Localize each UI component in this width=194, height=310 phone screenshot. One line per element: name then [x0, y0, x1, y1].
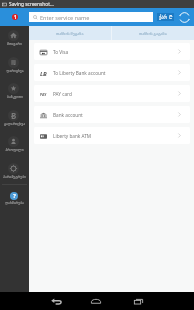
staticText: To Visa: [53, 49, 69, 55]
button[interactable]: LB: [34, 64, 190, 81]
staticText: ?: [13, 192, 16, 200]
button[interactable]: PAY: [34, 85, 190, 102]
button[interactable]: Recent apps: [130, 292, 146, 310]
button[interactable]: Bank account: [34, 106, 190, 123]
staticText: ₾: [169, 14, 173, 20]
staticText: პროფილი: [5, 148, 24, 152]
button[interactable]: ქარ: [157, 13, 174, 21]
button[interactable]: დარიცხვა: [0, 57, 29, 73]
button[interactable]: Enter service name: [29, 12, 153, 22]
staticText: Enter service name: [40, 14, 90, 21]
button[interactable]: Home: [88, 292, 104, 310]
button[interactable]: თანხის გატანა: [112, 26, 194, 40]
staticText: ბანკვითი: [7, 95, 23, 99]
staticText: პარამეტრები: [3, 175, 26, 179]
button[interactable]: მთავარი: [0, 30, 29, 46]
staticText: Bank account: [53, 112, 83, 118]
button[interactable]: Ƀ: [0, 110, 29, 126]
staticText: To Liberty Bank account: [53, 70, 106, 76]
button[interactable]: ბანკვითი: [0, 83, 29, 99]
button[interactable]: Liberty bank ATM: [34, 127, 190, 144]
button[interactable]: To Visa: [34, 43, 190, 60]
button[interactable]: თანხის შეტანა: [29, 26, 111, 40]
button[interactable]: Back: [48, 292, 64, 310]
staticText: Ƀ: [11, 110, 17, 121]
staticText: ქარ: [159, 15, 168, 20]
staticText: PAY: [40, 92, 47, 97]
button[interactable]: Notifications: [0, 8, 29, 26]
button[interactable]: Refresh: [179, 12, 190, 23]
staticText: თანხის შეტანა: [56, 31, 84, 36]
staticText: Liberty bank ATM: [53, 133, 92, 139]
staticText: თანხის გატანა: [139, 31, 167, 36]
button[interactable]: პროფილი: [0, 136, 29, 152]
staticText: დახმარება: [5, 201, 24, 205]
staticText: გადარიცხვა: [4, 122, 25, 126]
staticText: 1: [14, 14, 17, 20]
staticText: დარიცხვა: [6, 69, 24, 73]
button[interactable]: პარამეტრები: [0, 163, 29, 179]
staticText: Saving screenshot...: [9, 1, 54, 8]
button[interactable]: ?: [0, 192, 29, 205]
staticText: LB: [40, 70, 47, 77]
staticText: მთავარი: [7, 42, 22, 46]
staticText: PAY card: [53, 91, 72, 97]
